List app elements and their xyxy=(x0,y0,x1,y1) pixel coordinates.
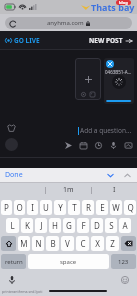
button[interactable]: F xyxy=(77,218,89,233)
staticText: T xyxy=(72,202,77,213)
staticText: U xyxy=(43,202,49,213)
staticText: J xyxy=(40,220,43,231)
staticText: D xyxy=(94,220,100,231)
staticText: Q xyxy=(127,202,134,213)
button[interactable]: 1m xyxy=(46,183,91,197)
button[interactable]: I xyxy=(27,200,38,215)
button[interactable]: shift xyxy=(1,236,16,251)
button[interactable]: Done xyxy=(5,170,23,180)
staticText: M xyxy=(20,238,28,249)
button[interactable]: Y xyxy=(54,200,66,215)
staticText: GO LIVE xyxy=(14,36,40,45)
button[interactable]: T xyxy=(68,200,80,215)
button[interactable]: Previous field xyxy=(123,171,132,180)
staticText: Z xyxy=(110,238,115,249)
staticText: S xyxy=(109,220,114,231)
button[interactable]: G xyxy=(63,218,75,233)
staticText: 123 xyxy=(118,258,129,266)
button[interactable]: Reload xyxy=(8,19,17,28)
button[interactable]: NEW POST xyxy=(89,36,132,45)
staticText: 1m xyxy=(63,185,74,195)
button[interactable]: Send xyxy=(64,141,72,149)
staticText: N xyxy=(35,238,42,249)
staticText: 0463B51-A... xyxy=(105,69,132,75)
staticText: F xyxy=(81,220,86,231)
button[interactable]: Q xyxy=(124,200,136,215)
staticText: V xyxy=(65,238,70,249)
button[interactable]: Add image xyxy=(124,141,132,149)
staticText: Y xyxy=(58,202,63,213)
staticText: P xyxy=(4,202,9,213)
button[interactable]: Z xyxy=(106,236,119,251)
button[interactable]: E xyxy=(96,200,108,215)
button[interactable]: return xyxy=(1,254,26,269)
button[interactable]: L xyxy=(6,218,19,233)
button[interactable]: A xyxy=(119,218,131,233)
staticText: A xyxy=(122,220,128,231)
button[interactable]: O xyxy=(14,200,25,215)
button[interactable]: P xyxy=(1,200,12,215)
button[interactable]: Timer xyxy=(94,141,102,149)
staticText: I xyxy=(113,185,116,195)
staticText: printeranthrma.snd.lyoti xyxy=(2,289,43,294)
staticText: C xyxy=(80,238,86,249)
button[interactable]: Record audio xyxy=(109,141,117,149)
staticText: K xyxy=(25,220,30,231)
button[interactable]: V xyxy=(61,236,74,251)
button[interactable]: S xyxy=(105,218,117,233)
button[interactable]: U xyxy=(40,200,52,215)
button[interactable]: Reload xyxy=(5,17,132,29)
staticText: return xyxy=(5,258,23,266)
staticText: O xyxy=(16,202,23,213)
button[interactable]: 123 xyxy=(111,254,136,269)
button[interactable]: N xyxy=(32,236,44,251)
staticText: R xyxy=(86,202,91,213)
staticText: space xyxy=(60,258,77,266)
button[interactable]: X xyxy=(91,236,104,251)
button[interactable]: H xyxy=(49,218,61,233)
button[interactable]: I xyxy=(92,183,137,197)
button[interactable]: J xyxy=(35,218,47,233)
staticText: H xyxy=(52,220,58,231)
button[interactable]: Schedule xyxy=(79,141,87,149)
staticText: NEW POST xyxy=(89,36,123,45)
staticText: I xyxy=(31,202,34,213)
button[interactable]: W xyxy=(110,200,122,215)
button[interactable]: Add media xyxy=(75,58,101,100)
staticText: E xyxy=(100,202,105,213)
button[interactable]: Next field xyxy=(106,171,115,180)
button[interactable]: B xyxy=(46,236,59,251)
button[interactable]: R xyxy=(82,200,94,215)
button[interactable]: Emoji xyxy=(120,275,130,285)
button[interactable]: C xyxy=(76,236,89,251)
button[interactable]: D xyxy=(91,218,103,233)
button[interactable]: M xyxy=(18,236,30,251)
staticText: L xyxy=(10,220,15,231)
staticText: Thats bay xyxy=(91,1,135,13)
staticText: anyhma.com xyxy=(47,19,84,27)
staticText: blog xyxy=(119,0,128,5)
button[interactable]: delete xyxy=(121,236,136,251)
button[interactable]: Dictate xyxy=(7,275,17,285)
button[interactable]: GO LIVE xyxy=(5,36,40,45)
staticText: W xyxy=(112,202,120,213)
staticText: B xyxy=(50,238,56,249)
staticText: Add a question... xyxy=(80,126,132,135)
button[interactable]: Remove attachment xyxy=(106,60,114,68)
staticText: X xyxy=(95,238,100,249)
button[interactable]: space xyxy=(28,254,109,269)
staticText: G xyxy=(66,220,72,231)
button[interactable]: K xyxy=(21,218,33,233)
